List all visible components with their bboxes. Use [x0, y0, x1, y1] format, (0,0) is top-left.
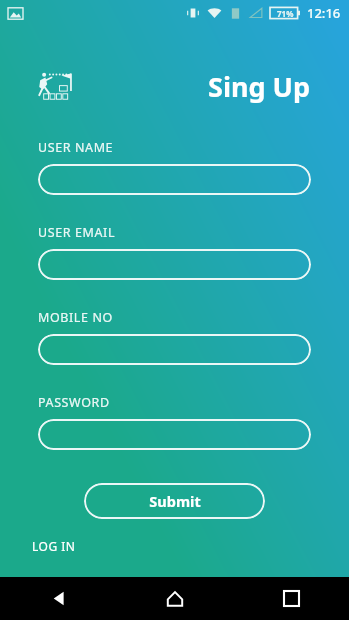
staticText: USER NAME: [38, 139, 114, 156]
staticText: PASSWORD: [38, 394, 110, 411]
button[interactable]: [38, 419, 311, 450]
button[interactable]: [38, 334, 311, 365]
button[interactable]: Recents: [233, 577, 349, 620]
button[interactable]: [38, 249, 311, 280]
staticText: 12:16: [307, 4, 341, 22]
button[interactable]: Back: [0, 577, 117, 620]
staticText: Sing Up: [208, 68, 311, 105]
button[interactable]: Home: [117, 577, 233, 620]
staticText: MOBILE NO: [38, 309, 113, 326]
staticText: Submit: [149, 491, 201, 511]
button[interactable]: Submit: [84, 483, 265, 519]
staticText: LOG IN: [32, 538, 76, 554]
button[interactable]: LOG IN: [28, 535, 80, 557]
staticText: USER EMAIL: [38, 224, 116, 241]
button[interactable]: [38, 164, 311, 195]
staticText: 71%: [277, 8, 294, 19]
